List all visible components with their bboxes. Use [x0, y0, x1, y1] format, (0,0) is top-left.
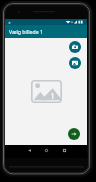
button[interactable]: Back	[21, 144, 37, 157]
button[interactable]: Home	[38, 144, 54, 157]
button[interactable]: Take photo	[69, 41, 81, 53]
button[interactable]: Recent apps	[56, 144, 72, 157]
staticText: Vælg billede 1	[9, 28, 43, 35]
button[interactable]: Next	[68, 128, 80, 140]
button[interactable]: Choose image	[69, 57, 81, 69]
